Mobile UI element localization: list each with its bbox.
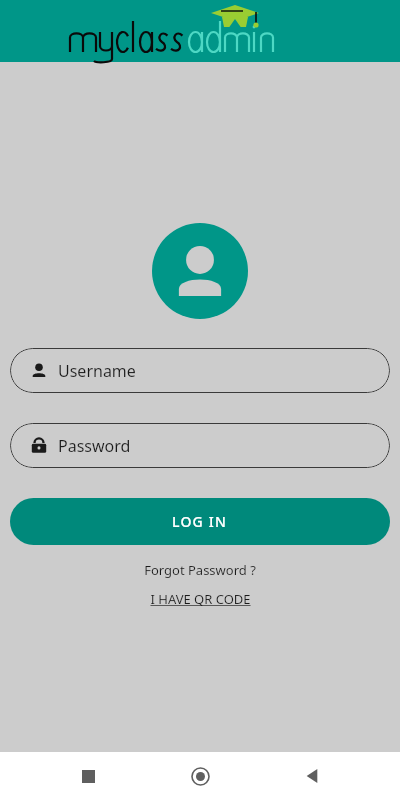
button[interactable]: LOG IN — [10, 498, 390, 545]
button[interactable]: I HAVE QR CODE — [144, 588, 257, 610]
button[interactable]: Recent apps — [64, 752, 112, 800]
button[interactable]: Back — [288, 752, 336, 800]
staticText: LOG IN — [172, 512, 228, 531]
button[interactable]: Home — [176, 752, 224, 800]
staticText: Password — [58, 435, 131, 457]
button[interactable]: Password — [10, 423, 390, 468]
staticText: I HAVE QR CODE — [150, 590, 251, 608]
staticText: Forgot Password ? — [144, 561, 256, 579]
button[interactable]: Forgot Password ? — [138, 559, 262, 581]
staticText: Username — [58, 360, 136, 382]
button[interactable]: Username — [10, 348, 390, 393]
